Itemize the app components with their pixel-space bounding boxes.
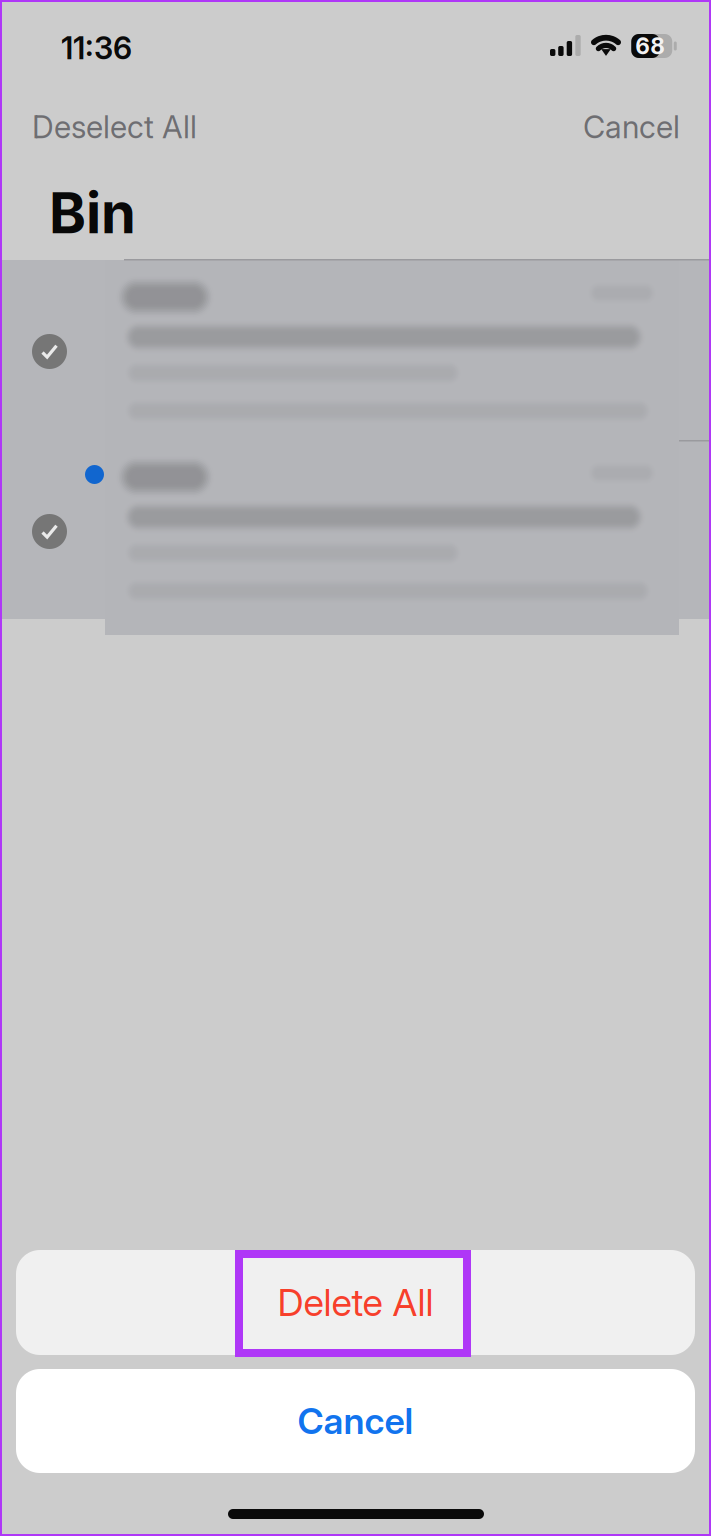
staticText: Delete All [277, 1280, 433, 1325]
button[interactable]: Cancel [570, 110, 680, 144]
staticText: Deselect All [32, 108, 197, 145]
staticText: Cancel [297, 1399, 413, 1443]
button[interactable]: Deselect message [32, 334, 67, 369]
staticText: Bin [49, 179, 136, 247]
staticText: 68 [635, 32, 665, 60]
button[interactable]: Cancel [16, 1369, 695, 1473]
button[interactable]: Deselect message [32, 514, 67, 549]
staticText: Cancel [583, 108, 680, 145]
staticText: 11:36 [61, 29, 132, 66]
button[interactable]: Delete All [16, 1250, 695, 1355]
button[interactable]: Deselect All [32, 110, 232, 144]
